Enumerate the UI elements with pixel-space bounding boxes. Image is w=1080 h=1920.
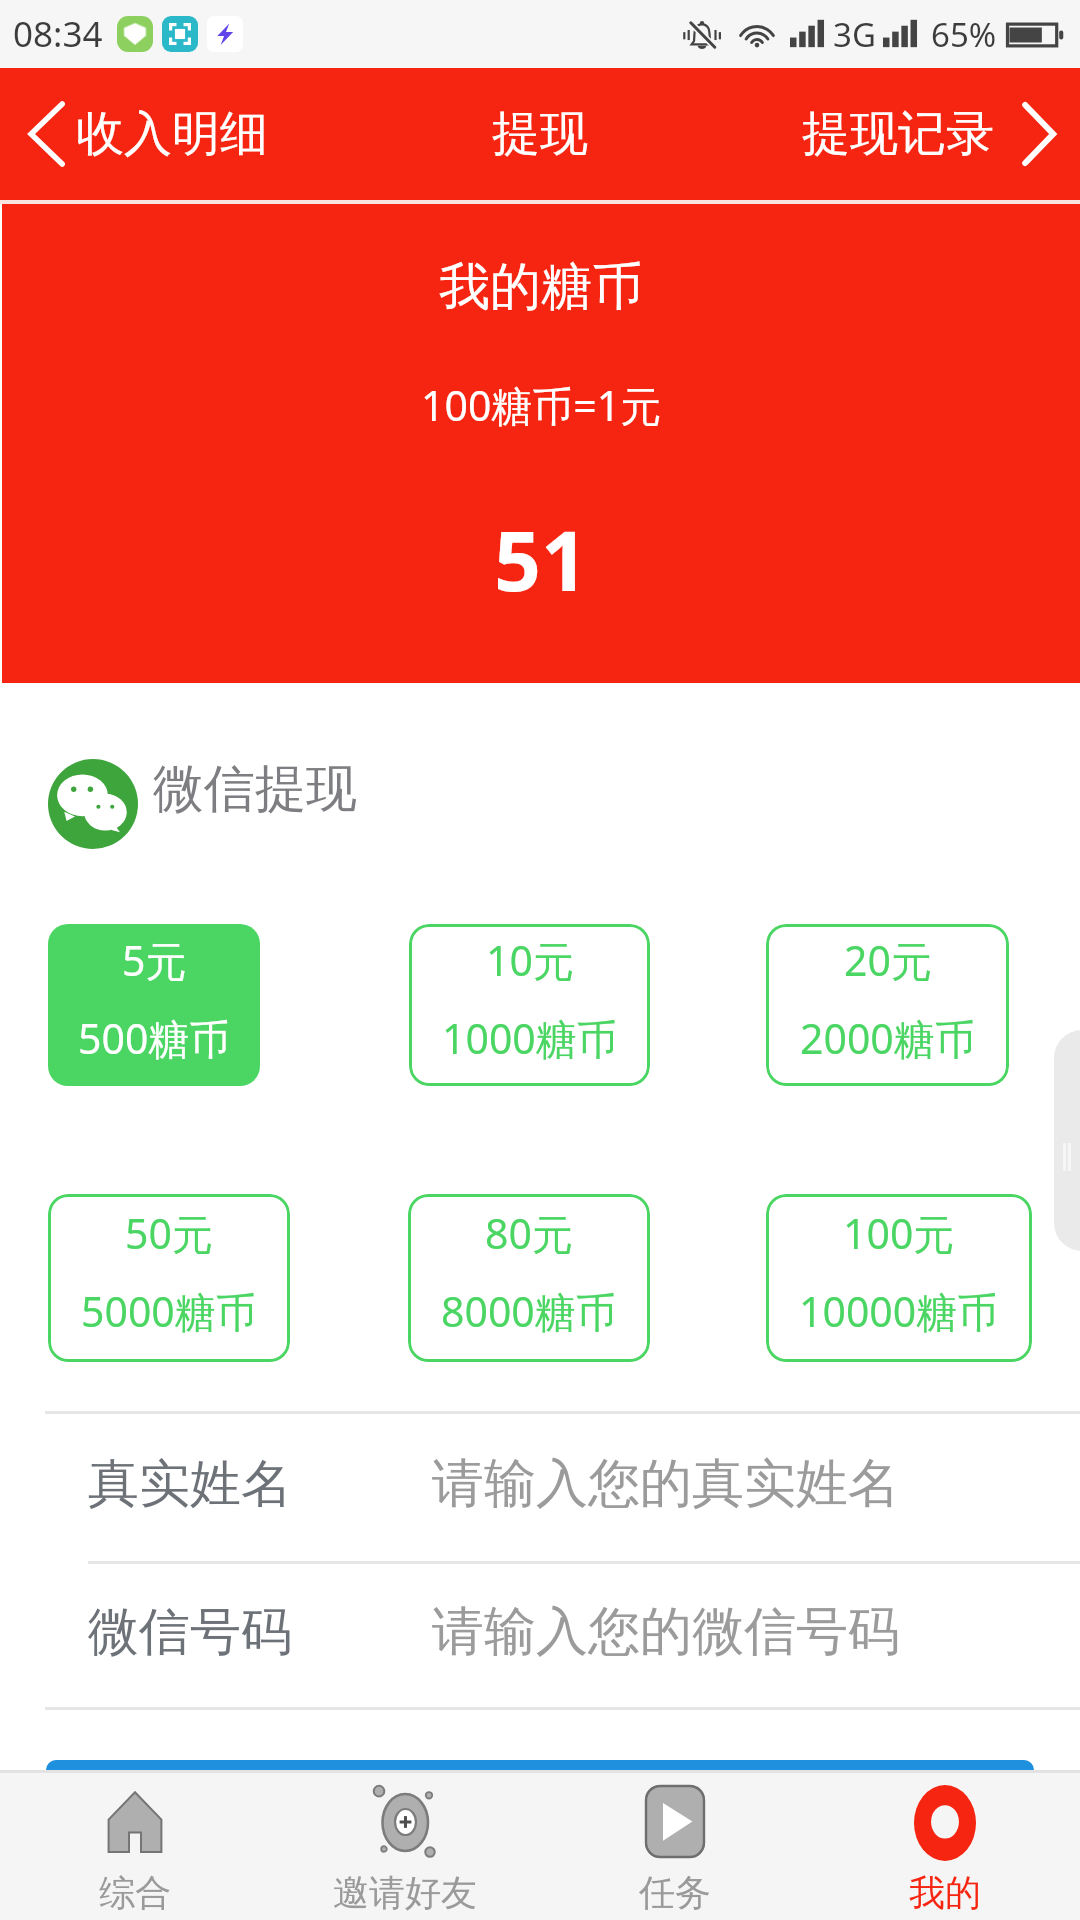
- button[interactable]: 80元: [408, 1194, 650, 1362]
- staticText: 提现记录: [802, 104, 994, 164]
- button[interactable]: 20元: [766, 924, 1009, 1086]
- staticText: 收入明细: [76, 104, 268, 164]
- button[interactable]: 5元: [48, 924, 260, 1086]
- staticText: 51: [494, 503, 588, 615]
- staticText: 邀请好友: [333, 1870, 477, 1915]
- staticText: 我的: [909, 1870, 981, 1915]
- staticText: 10元: [486, 932, 574, 988]
- staticText: 5000糖币: [81, 1283, 257, 1339]
- staticText: 1000糖币: [442, 1010, 618, 1066]
- staticText: 5元: [122, 932, 187, 988]
- button[interactable]: 收入明细: [28, 102, 268, 166]
- staticText: 8000糖币: [441, 1283, 617, 1339]
- staticText: 请输入您的真实姓名: [432, 1451, 900, 1517]
- staticText: 2000糖币: [800, 1010, 976, 1066]
- staticText: 真实姓名: [88, 1452, 292, 1516]
- staticText: 10000糖币: [799, 1283, 999, 1339]
- staticText: 500糖币: [78, 1010, 231, 1066]
- button[interactable]: 综合: [0, 1773, 270, 1920]
- button[interactable]: 50元: [48, 1194, 290, 1362]
- staticText: 请输入您的微信号码: [432, 1599, 900, 1665]
- staticText: 100糖币=1元: [421, 377, 662, 433]
- staticText: 微信提现: [153, 757, 357, 821]
- staticText: 65%: [931, 12, 997, 57]
- button[interactable]: [46, 1760, 1034, 1770]
- button[interactable]: 10元: [409, 924, 650, 1086]
- staticText: 100元: [843, 1205, 955, 1261]
- button[interactable]: Assistive touch: [1054, 1030, 1080, 1251]
- staticText: 3G: [833, 12, 876, 57]
- button[interactable]: 任务: [540, 1773, 810, 1920]
- staticText: 08:34: [13, 10, 103, 58]
- staticText: 20元: [844, 932, 932, 988]
- staticText: 80元: [485, 1205, 573, 1261]
- button[interactable]: 微信号码: [0, 1564, 1080, 1707]
- staticText: 我的糖币: [439, 255, 643, 319]
- staticText: 任务: [639, 1870, 711, 1915]
- button[interactable]: 真实姓名: [0, 1414, 1080, 1561]
- staticText: 综合: [99, 1870, 171, 1915]
- button[interactable]: 100元: [766, 1194, 1032, 1362]
- button[interactable]: 我的: [810, 1773, 1080, 1920]
- staticText: 50元: [125, 1205, 213, 1261]
- button[interactable]: 邀请好友: [270, 1773, 540, 1920]
- button[interactable]: 提现记录: [802, 103, 1058, 165]
- button[interactable]: 微信提现: [0, 683, 1080, 868]
- staticText: 提现: [492, 104, 588, 164]
- staticText: 微信号码: [88, 1600, 292, 1664]
